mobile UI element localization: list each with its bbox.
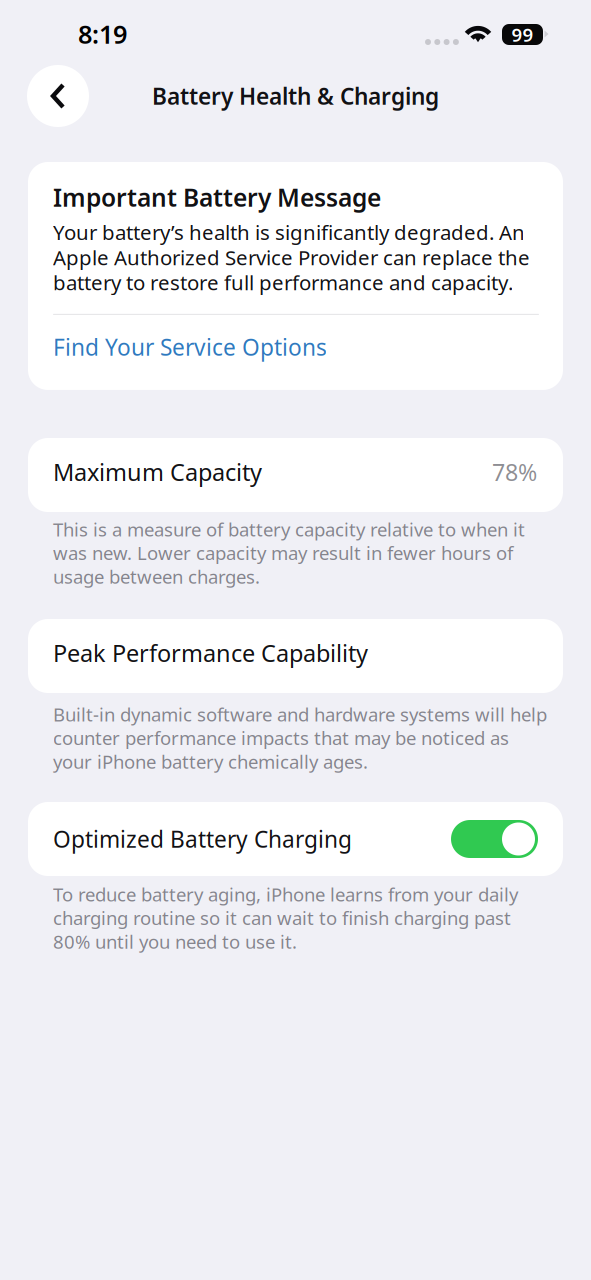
staticText: Battery Health & Charging [152, 81, 439, 111]
staticText: Peak Performance Capability [53, 637, 368, 669]
staticText: 78% [492, 457, 537, 487]
staticText: To reduce battery aging, iPhone learns f… [53, 882, 518, 954]
staticText: Optimized Battery Charging [53, 824, 352, 854]
button[interactable]: Find Your Service Options [53, 315, 327, 365]
button[interactable]: Optimized Battery Charging [28, 802, 563, 876]
staticText: Maximum Capacity [53, 456, 262, 488]
staticText: 99 [511, 22, 533, 47]
button[interactable]: Maximum Capacity [28, 438, 563, 512]
button[interactable]: Peak Performance Capability [28, 619, 563, 693]
staticText: Important Battery Message [53, 181, 381, 214]
staticText: Your battery’s health is significantly d… [53, 219, 530, 296]
staticText: Built-in dynamic software and hardware s… [53, 702, 547, 774]
button[interactable]: Back [27, 65, 89, 127]
staticText: This is a measure of battery capacity re… [53, 517, 525, 589]
staticText: 8:19 [78, 17, 127, 51]
staticText: Find Your Service Options [53, 332, 327, 362]
